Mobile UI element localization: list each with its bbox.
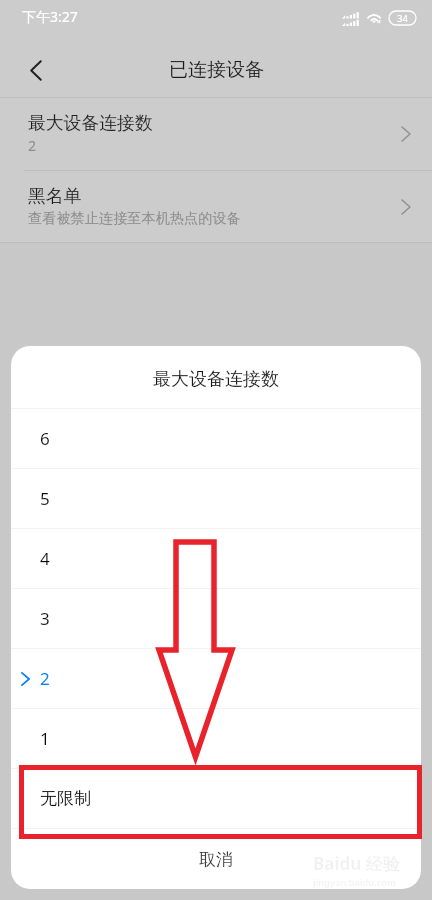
staticText: 2 — [28, 136, 37, 155]
button[interactable]: 3 — [11, 589, 421, 648]
staticText: 6 — [40, 427, 50, 450]
staticText: 3 — [40, 607, 50, 630]
button[interactable]: 取消 — [11, 829, 421, 889]
button[interactable]: 6 — [11, 409, 421, 468]
staticText: 最大设备连接数 — [28, 112, 153, 134]
button[interactable]: 2 — [11, 649, 421, 708]
staticText: 取消 — [199, 849, 233, 870]
staticText: 黑名单 — [28, 185, 82, 207]
button[interactable]: 5 — [11, 469, 421, 528]
button[interactable]: 4 — [11, 529, 421, 588]
staticText: 下午3:27 — [22, 7, 78, 26]
staticText: 4 — [40, 547, 50, 570]
button[interactable]: 黑名单 — [0, 171, 432, 242]
staticText: 5 — [40, 487, 50, 510]
button[interactable]: 最大设备连接数 — [0, 98, 432, 170]
staticText: 1 — [40, 727, 50, 750]
button[interactable]: 1 — [11, 709, 421, 768]
staticText: 无限制 — [40, 788, 91, 809]
staticText: 最大设备连接数 — [153, 368, 279, 391]
staticText: 34 — [397, 12, 408, 25]
staticText: 查看被禁止连接至本机热点的设备 — [28, 209, 241, 227]
other: Highlight — [19, 765, 422, 839]
staticText: Baidu 经验 — [313, 852, 400, 875]
staticText: jingyan.baidu.com — [313, 876, 396, 888]
button[interactable]: 无限制 — [11, 769, 421, 828]
staticText: 已连接设备 — [169, 58, 264, 82]
button[interactable]: Back — [10, 44, 62, 97]
staticText: 2 — [40, 667, 50, 690]
